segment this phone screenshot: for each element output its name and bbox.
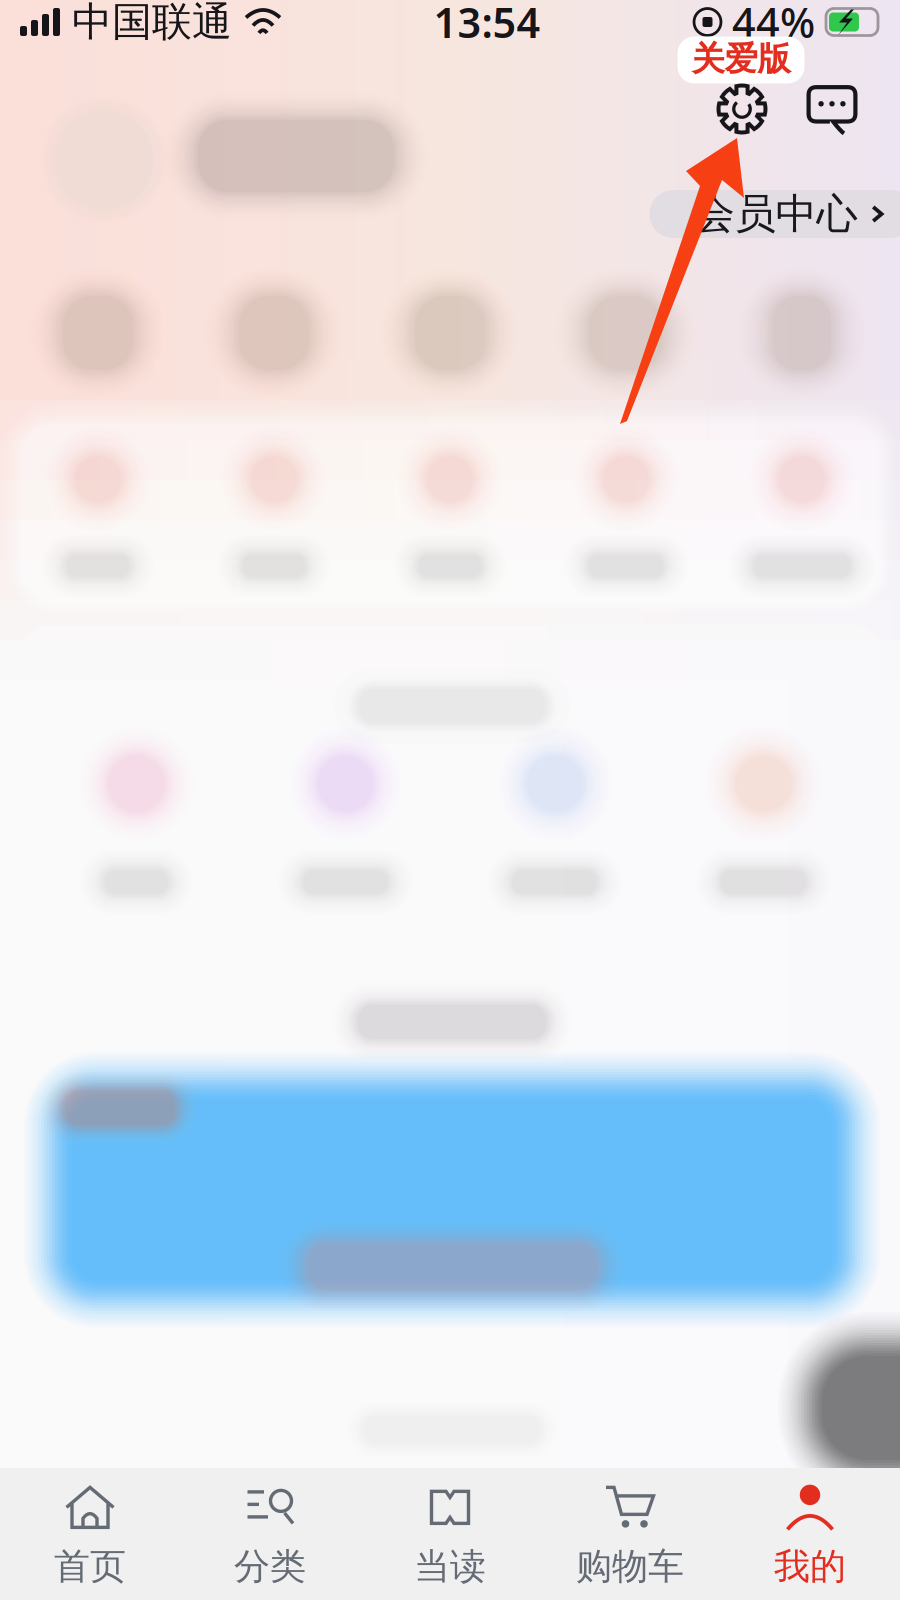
button[interactable] — [186, 269, 362, 397]
button[interactable]: 分类 — [180, 1467, 360, 1600]
staticText: 44% — [732, 0, 815, 49]
button[interactable] — [538, 269, 714, 397]
button[interactable]: 消息 — [806, 83, 858, 135]
staticText: 分类 — [234, 1544, 306, 1589]
button[interactable]: 购物车 — [540, 1467, 720, 1600]
button[interactable] — [32, 726, 241, 914]
staticText: 首页 — [54, 1544, 126, 1589]
button[interactable] — [10, 426, 186, 598]
button[interactable]: 关爱版 — [677, 36, 804, 83]
staticText: 13:54 — [433, 0, 540, 49]
staticText: 会员中心 — [693, 189, 857, 239]
button[interactable]: 会员中心 — [649, 190, 900, 238]
button[interactable]: 用户头像 — [33, 89, 175, 231]
button[interactable] — [186, 426, 362, 598]
staticText: 中国联通 — [72, 0, 232, 46]
button[interactable]: 设置 — [717, 84, 767, 134]
button[interactable]: 推荐活动 — [24, 1052, 880, 1328]
staticText: 关爱版 — [691, 38, 790, 79]
button[interactable] — [714, 269, 890, 397]
button[interactable] — [659, 726, 868, 914]
staticText: 当读 — [414, 1544, 486, 1589]
button[interactable] — [538, 426, 714, 598]
button[interactable]: 当读 — [360, 1467, 540, 1600]
button[interactable]: 我的 — [720, 1467, 900, 1600]
button[interactable] — [10, 269, 186, 397]
button[interactable]: 首页 — [0, 1467, 180, 1600]
button[interactable] — [362, 269, 538, 397]
button[interactable] — [362, 426, 538, 598]
button[interactable]: 在线客服 — [778, 1312, 900, 1504]
staticText: 我的 — [774, 1544, 846, 1589]
button[interactable] — [450, 726, 659, 914]
button[interactable] — [241, 726, 450, 914]
button[interactable] — [714, 426, 890, 598]
staticText: 购物车 — [576, 1544, 684, 1589]
